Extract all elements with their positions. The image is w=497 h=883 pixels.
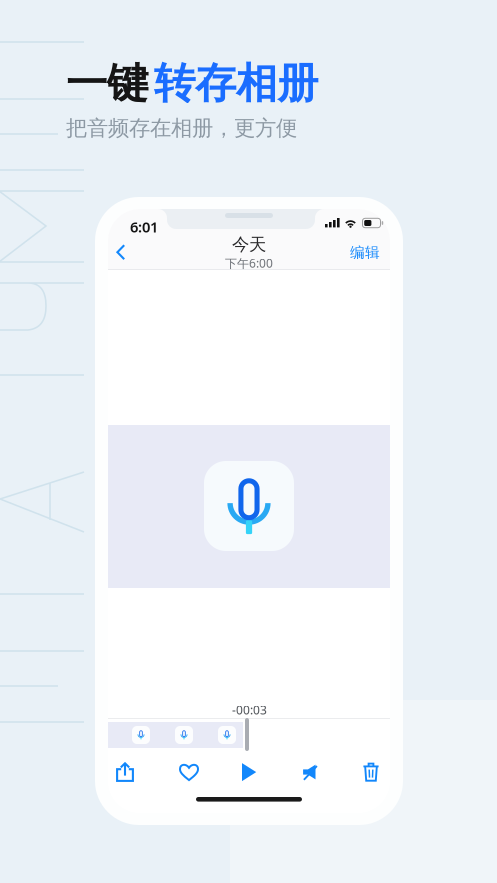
staticText: 下午6:00 <box>225 255 273 271</box>
staticText: 转存相册 <box>154 58 318 109</box>
button[interactable]: Mute <box>287 754 333 790</box>
staticText: 6:01 <box>130 217 158 236</box>
button[interactable]: Back <box>108 231 136 274</box>
staticText: 把音频存在相册，更方便 <box>66 115 297 141</box>
staticText: 一键 <box>66 58 148 109</box>
button[interactable]: Share <box>102 754 148 790</box>
button[interactable]: Favorite <box>166 754 212 790</box>
staticText: 编辑 <box>350 243 380 261</box>
button[interactable]: Delete <box>348 754 394 790</box>
button[interactable]: Play <box>226 754 272 790</box>
button[interactable]: 编辑 <box>340 229 390 275</box>
staticText: -00:03 <box>232 702 267 718</box>
staticText: 今天 <box>232 234 266 255</box>
